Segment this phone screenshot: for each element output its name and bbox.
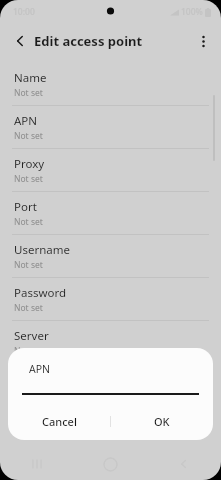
staticText: Not set	[14, 259, 43, 271]
staticText: Not set	[14, 87, 43, 99]
button[interactable]: MMSC	[0, 364, 221, 406]
staticText: Not set	[14, 345, 43, 357]
staticText: Not set	[14, 130, 43, 142]
staticText: APN	[14, 113, 38, 129]
staticText: Username	[14, 242, 70, 258]
staticText: Password	[14, 285, 67, 301]
button[interactable]: Proxy	[0, 149, 221, 191]
staticText: Not set	[14, 302, 43, 314]
button[interactable]: Name	[0, 63, 221, 105]
staticText: Not set	[14, 173, 43, 185]
staticText: Port	[14, 199, 37, 215]
button[interactable]: More options	[190, 28, 216, 54]
button[interactable]: OK	[111, 402, 213, 440]
button[interactable]: Cancel	[8, 402, 110, 440]
staticText: Not set	[14, 388, 43, 400]
button[interactable]: Password	[0, 278, 221, 320]
staticText: 10:00	[13, 6, 35, 18]
button[interactable]: Port	[0, 192, 221, 234]
staticText: Server	[14, 328, 49, 344]
button[interactable]: Recent apps	[0, 448, 73, 480]
button[interactable]: Back	[147, 448, 221, 480]
staticText: MMSC	[14, 371, 49, 387]
staticText: Proxy	[14, 156, 45, 172]
button[interactable]: Username	[0, 235, 221, 277]
staticText: Cancel	[42, 414, 77, 429]
button[interactable]: Navigate up	[8, 29, 32, 53]
staticText: Edit access point	[34, 32, 143, 50]
button[interactable]: APN	[0, 106, 221, 148]
button[interactable]: Server	[0, 321, 221, 363]
staticText: Name	[14, 70, 47, 86]
staticText: APN	[29, 362, 51, 376]
staticText: Not set	[14, 216, 43, 228]
staticText: OK	[154, 414, 170, 429]
staticText: 100%	[181, 6, 203, 18]
